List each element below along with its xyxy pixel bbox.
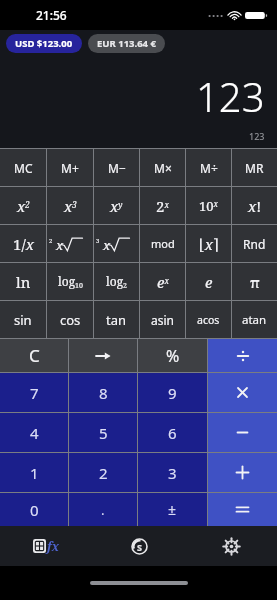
button[interactable]: π: [232, 263, 277, 300]
staticText: acos: [197, 313, 220, 327]
staticText: tan: [106, 311, 127, 329]
staticText: 0: [30, 500, 39, 520]
staticText: 1/x: [13, 234, 34, 254]
staticText: 9: [168, 383, 177, 403]
staticText: %: [166, 345, 180, 367]
button[interactable]: log10: [47, 263, 93, 300]
button[interactable]: Backspace: [69, 339, 137, 372]
staticText: M−: [108, 160, 126, 176]
button[interactable]: Equals: [208, 493, 277, 526]
button[interactable]: 2: [69, 453, 137, 492]
staticText: EUR 113.64 €: [97, 37, 156, 50]
staticText: ±: [168, 500, 177, 519]
button[interactable]: Currency converter: [93, 526, 185, 566]
button[interactable]: Divide: [208, 339, 277, 372]
button[interactable]: 3: [138, 453, 207, 492]
button[interactable]: x3: [47, 187, 93, 224]
button[interactable]: 0: [0, 493, 68, 526]
button[interactable]: Settings: [185, 526, 277, 566]
staticText: π: [250, 272, 260, 292]
staticText: M×: [154, 160, 172, 176]
staticText: x3: [64, 196, 77, 216]
button[interactable]: M−: [94, 149, 139, 186]
staticText: 21:56: [36, 7, 67, 23]
staticText: 1: [30, 463, 39, 483]
button[interactable]: sin: [0, 301, 46, 338]
button[interactable]: acos: [186, 301, 231, 338]
staticText: 2: [99, 463, 108, 483]
button[interactable]: 9: [138, 373, 207, 412]
button[interactable]: EUR 113.64 €: [88, 34, 165, 53]
button[interactable]: %: [138, 339, 207, 372]
button[interactable]: Operator: [208, 373, 277, 412]
staticText: ex: [157, 272, 169, 292]
button[interactable]: x!: [232, 187, 277, 224]
button[interactable]: 2: [47, 225, 93, 262]
button[interactable]: 4: [0, 413, 68, 452]
button[interactable]: Operator: [208, 453, 277, 492]
staticText: fx: [47, 538, 60, 554]
button[interactable]: 1/x: [0, 225, 46, 262]
button[interactable]: 5: [69, 413, 137, 452]
staticText: ⌊x⌉: [199, 234, 219, 254]
button[interactable]: cos: [47, 301, 93, 338]
button[interactable]: 1: [0, 453, 68, 492]
staticText: x2: [17, 196, 30, 216]
staticText: log2: [106, 273, 128, 290]
staticText: 7: [30, 383, 39, 403]
button[interactable]: 3: [94, 225, 139, 262]
button[interactable]: mod: [140, 225, 185, 262]
button[interactable]: M÷: [186, 149, 231, 186]
staticText: MC: [14, 160, 33, 176]
button[interactable]: MR: [232, 149, 277, 186]
button[interactable]: 2x: [140, 187, 185, 224]
button[interactable]: asin: [140, 301, 185, 338]
staticText: cos: [60, 311, 81, 329]
button[interactable]: xy: [94, 187, 139, 224]
staticText: 2: [49, 237, 53, 245]
staticText: 4: [30, 423, 39, 443]
staticText: mod: [151, 236, 175, 251]
button[interactable]: tan: [94, 301, 139, 338]
button[interactable]: .: [69, 493, 137, 526]
button[interactable]: ±: [138, 493, 207, 526]
button[interactable]: 7: [0, 373, 68, 412]
staticText: e: [205, 272, 213, 292]
staticText: USD $123.00: [15, 37, 73, 50]
button[interactable]: ln: [0, 263, 46, 300]
staticText: x: [56, 236, 64, 254]
staticText: M+: [61, 160, 79, 176]
staticText: MR: [245, 160, 264, 176]
button[interactable]: 10x: [186, 187, 231, 224]
button[interactable]: USD $123.00: [6, 34, 82, 53]
staticText: sin: [14, 311, 32, 329]
button[interactable]: Operator: [208, 413, 277, 452]
button[interactable]: MC: [0, 149, 46, 186]
button[interactable]: Calculator: [0, 526, 93, 566]
staticText: x!: [248, 196, 262, 216]
button[interactable]: ⌊x⌉: [186, 225, 231, 262]
button[interactable]: atan: [232, 301, 277, 338]
button[interactable]: M+: [47, 149, 93, 186]
staticText: S: [137, 541, 142, 553]
button[interactable]: x2: [0, 187, 46, 224]
staticText: x: [103, 236, 111, 254]
staticText: 10x: [199, 197, 218, 215]
staticText: log10: [58, 273, 83, 290]
button[interactable]: C: [0, 339, 68, 372]
button[interactable]: 6: [138, 413, 207, 452]
button[interactable]: ex: [140, 263, 185, 300]
staticText: ln: [16, 272, 31, 292]
staticText: Rnd: [243, 236, 266, 252]
staticText: 6: [168, 423, 177, 443]
staticText: xy: [110, 196, 123, 216]
button[interactable]: log2: [94, 263, 139, 300]
staticText: M÷: [200, 160, 218, 176]
button[interactable]: Rnd: [232, 225, 277, 262]
staticText: 3: [168, 463, 177, 483]
button[interactable]: 8: [69, 373, 137, 412]
staticText: atan: [242, 312, 267, 328]
button[interactable]: e: [186, 263, 231, 300]
staticText: 5: [99, 423, 108, 443]
button[interactable]: M×: [140, 149, 185, 186]
